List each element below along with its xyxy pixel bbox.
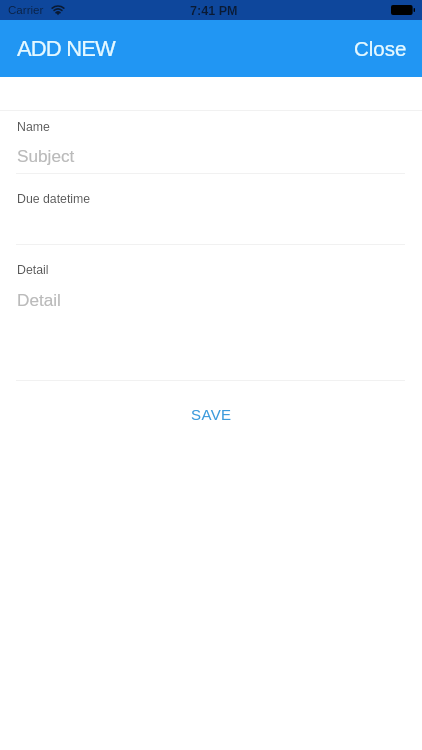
button[interactable] bbox=[0, 174, 422, 245]
staticText: Due datetime bbox=[17, 192, 91, 206]
button[interactable]: SAVE bbox=[0, 398, 422, 430]
staticText: Subject bbox=[17, 146, 75, 165]
other: Battery full bbox=[391, 5, 415, 15]
other: Wi-Fi signal bbox=[51, 5, 65, 15]
button[interactable] bbox=[0, 245, 422, 381]
staticText: Detail bbox=[17, 263, 49, 277]
staticText: 7:41 PM bbox=[190, 4, 238, 18]
staticText: Carrier bbox=[8, 3, 44, 16]
staticText: Name bbox=[17, 120, 50, 134]
staticText: Detail bbox=[17, 290, 61, 309]
staticText: ADD NEW bbox=[17, 36, 115, 61]
button[interactable] bbox=[0, 111, 422, 174]
staticText: Close bbox=[354, 37, 407, 60]
button[interactable]: Close bbox=[337, 23, 422, 74]
staticText: SAVE bbox=[191, 406, 232, 423]
button[interactable]: ADD NEW bbox=[0, 23, 132, 74]
